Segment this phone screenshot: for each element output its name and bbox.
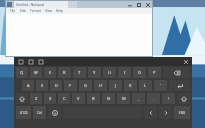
- staticText: K: [129, 83, 132, 88]
- button[interactable]: Q: [16, 67, 28, 78]
- button[interactable]: A: [22, 80, 34, 91]
- staticText: E: [49, 70, 52, 75]
- button[interactable]: Help: [54, 8, 65, 14]
- staticText: S: [41, 83, 44, 88]
- staticText: ': [160, 83, 161, 88]
- button[interactable]: Minimize: [125, 1, 134, 8]
- button[interactable]: I: [118, 67, 131, 78]
- staticText: ENG: [179, 111, 186, 115]
- button[interactable]: P: [148, 67, 161, 78]
- button[interactable]: Close keyboard: [181, 57, 190, 66]
- button[interactable]: N: [102, 93, 115, 104]
- button[interactable]: ENG: [174, 106, 190, 119]
- button[interactable]: !: [162, 93, 175, 104]
- staticText: .: [153, 96, 155, 101]
- button[interactable]: Shift: [16, 93, 28, 104]
- button[interactable]: Format: [28, 8, 43, 14]
- button[interactable]: V: [72, 93, 85, 104]
- button[interactable]: ': [154, 80, 167, 91]
- button[interactable]: J: [109, 80, 122, 91]
- button[interactable]: U: [103, 67, 116, 78]
- button[interactable]: Y: [88, 67, 101, 78]
- staticText: J: [115, 83, 117, 88]
- staticText: L: [144, 83, 147, 88]
- staticText: File: [10, 9, 16, 13]
- button[interactable]: Ctrl: [33, 106, 46, 119]
- staticText: O: [138, 70, 142, 75]
- button[interactable]: Z: [30, 93, 42, 104]
- staticText: F: [69, 83, 72, 88]
- staticText: Ctrl: [37, 111, 42, 115]
- button[interactable]: Handwriting: [27, 58, 35, 66]
- button[interactable]: Left: [144, 106, 157, 119]
- button[interactable]: C: [58, 93, 70, 104]
- staticText: !: [168, 96, 170, 101]
- button[interactable]: Dock: [37, 58, 45, 66]
- button[interactable]: O: [133, 67, 146, 78]
- button[interactable]: B: [87, 93, 100, 104]
- staticText: ,: [138, 96, 140, 101]
- staticText: Q: [20, 70, 24, 75]
- staticText: I: [124, 70, 126, 75]
- staticText: V: [77, 96, 80, 101]
- button[interactable]: W: [30, 67, 42, 78]
- button[interactable]: ,: [132, 93, 145, 104]
- button[interactable]: M: [117, 93, 130, 104]
- button[interactable]: .: [147, 93, 160, 104]
- staticText: A: [27, 83, 30, 88]
- button[interactable]: File: [8, 8, 18, 14]
- staticText: R: [63, 70, 66, 75]
- button[interactable]: D: [50, 80, 62, 91]
- staticText: Edit: [20, 9, 26, 13]
- button[interactable]: L: [139, 80, 152, 91]
- button[interactable]: Right: [159, 106, 172, 119]
- staticText: G: [84, 83, 87, 88]
- button[interactable]: R: [58, 67, 71, 78]
- button[interactable]: G: [79, 80, 92, 91]
- button[interactable]: Keyboard layout: [17, 58, 25, 66]
- button[interactable]: T: [73, 67, 86, 78]
- button[interactable]: K: [124, 80, 137, 91]
- button[interactable]: Close: [143, 1, 152, 8]
- staticText: View: [45, 9, 52, 13]
- button[interactable]: Enter: [169, 80, 190, 91]
- staticText: D: [55, 83, 58, 88]
- button[interactable]: Emoji: [48, 106, 61, 119]
- staticText: U: [108, 70, 111, 75]
- button[interactable]: S: [36, 80, 48, 91]
- staticText: &123: [20, 111, 28, 115]
- button[interactable]: X: [44, 93, 56, 104]
- button[interactable]: &123: [16, 106, 31, 119]
- button[interactable]: Untitled - Notepad: [14, 1, 68, 8]
- staticText: W: [34, 70, 38, 75]
- staticText: C: [63, 96, 66, 101]
- staticText: T: [78, 70, 81, 75]
- staticText: H: [99, 83, 102, 88]
- staticText: X: [49, 96, 52, 101]
- button[interactable]: F: [64, 80, 77, 91]
- button[interactable]: Maximize: [134, 1, 143, 8]
- staticText: N: [107, 96, 111, 101]
- staticText: Untitled - Notepad: [16, 3, 44, 7]
- staticText: Help: [56, 9, 63, 13]
- button[interactable]: E: [44, 67, 56, 78]
- staticText: Z: [35, 96, 38, 101]
- button[interactable]: Edit: [18, 8, 28, 14]
- staticText: Format: [30, 9, 41, 13]
- button[interactable]: H: [94, 80, 107, 91]
- button[interactable]: Shift: [177, 93, 190, 104]
- staticText: M: [122, 96, 126, 101]
- staticText: B: [92, 96, 95, 101]
- button[interactable]: View: [43, 8, 54, 14]
- staticText: P: [153, 70, 156, 75]
- button[interactable]: Backspace: [163, 67, 190, 78]
- staticText: Y: [93, 70, 96, 75]
